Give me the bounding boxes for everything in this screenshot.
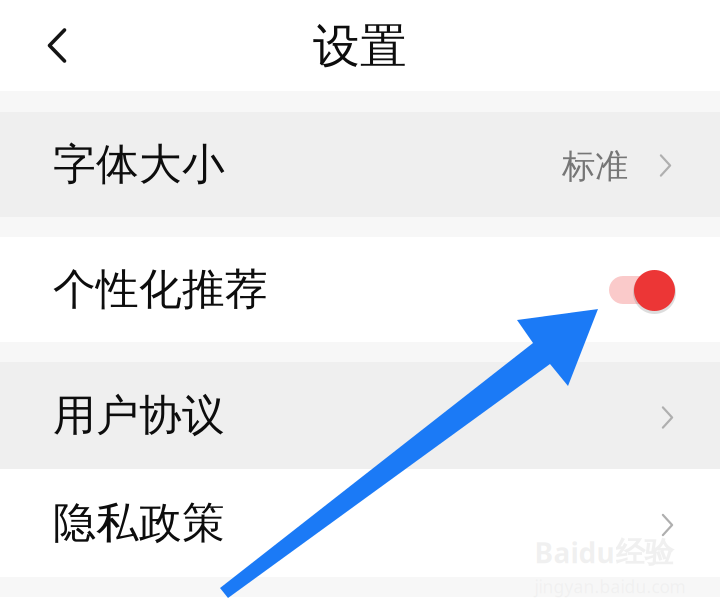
staticText: jingyan.baidu.com [534,575,685,598]
staticText: 个性化推荐 [53,263,268,316]
button[interactable]: 隐私政策 [0,469,720,577]
staticText: 用户协议 [53,389,225,442]
staticText: 设置 [313,18,407,75]
staticText: 标准 [562,146,628,187]
staticText: 经验 [615,534,673,570]
button[interactable]: 字体大小 [0,112,720,217]
button[interactable]: 用户协议 [0,362,720,469]
staticText: 字体大小 [53,138,225,191]
button[interactable]: 个性化推荐开关 [609,268,673,311]
button[interactable]: 个性化推荐 [0,237,720,342]
button[interactable]: Back [20,8,94,82]
staticText: Baidu [534,534,614,571]
staticText: 隐私政策 [53,497,225,549]
